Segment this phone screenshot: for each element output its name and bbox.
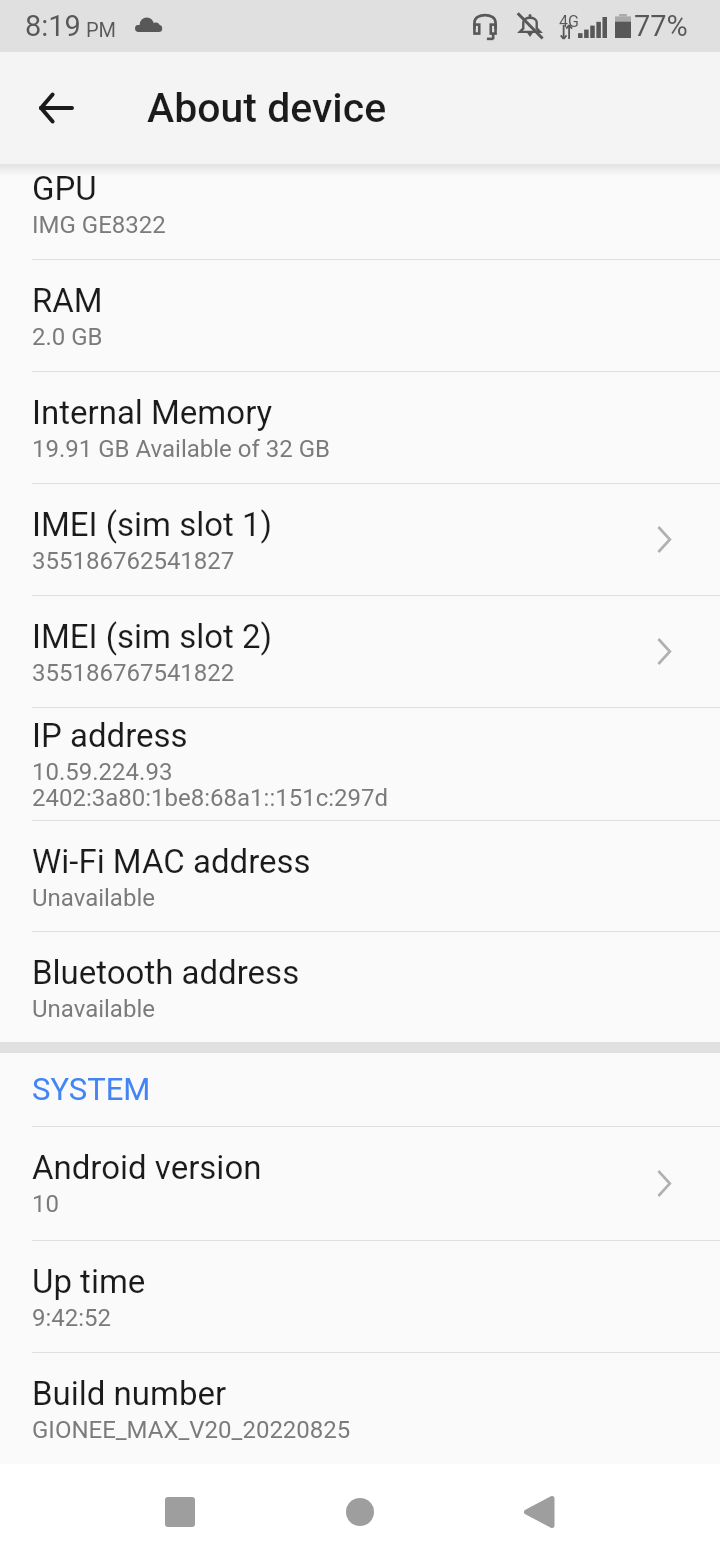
button[interactable]: RAM (0, 260, 720, 371)
staticText: RAM (32, 281, 103, 320)
staticText: 77% (634, 9, 688, 43)
staticText: 355186767541822 (32, 659, 235, 687)
button[interactable]: IMEI (sim slot 2) (0, 596, 720, 707)
staticText: 2402:3a80:1be8:68a1::151c:297d (32, 784, 389, 812)
staticText: Wi-Fi MAC address (32, 842, 311, 881)
staticText: SYSTEM (32, 1071, 151, 1107)
staticText: GPU (32, 169, 97, 208)
staticText: 355186762541827 (32, 547, 235, 575)
button[interactable]: Build number (0, 1353, 720, 1464)
button[interactable]: Back (468, 1464, 608, 1560)
button[interactable]: Bluetooth address (0, 932, 720, 1042)
staticText: 4G (559, 12, 579, 31)
staticText: Build number (32, 1374, 227, 1413)
button[interactable]: IP address (0, 708, 720, 820)
staticText: IP address (32, 716, 188, 755)
staticText: About device (147, 84, 387, 132)
button[interactable]: Back (0, 52, 112, 164)
button[interactable]: Android version (0, 1127, 720, 1240)
staticText: 8:19 (25, 9, 81, 43)
staticText: 2.0 GB (32, 323, 103, 351)
staticText: IMEI (sim slot 1) (32, 505, 273, 544)
staticText: 10 (32, 1190, 59, 1218)
staticText: GIONEE_MAX_V20_20220825 (32, 1416, 351, 1444)
button[interactable]: GPU (0, 164, 720, 259)
staticText: PM (86, 18, 117, 41)
button[interactable]: Up time (0, 1241, 720, 1352)
button[interactable]: Recent apps (110, 1464, 250, 1560)
button[interactable]: Wi-Fi MAC address (0, 821, 720, 931)
staticText: Up time (32, 1262, 146, 1301)
staticText: Internal Memory (32, 393, 273, 432)
staticText: IMEI (sim slot 2) (32, 617, 273, 656)
button[interactable]: Internal Memory (0, 372, 720, 483)
staticText: Bluetooth address (32, 953, 300, 992)
button[interactable]: Home (290, 1464, 430, 1560)
staticText: IMG GE8322 (32, 211, 166, 239)
staticText: Unavailable (32, 995, 155, 1023)
staticText: 10.59.224.93 (32, 758, 173, 786)
staticText: Unavailable (32, 884, 155, 912)
staticText: 19.91 GB Available of 32 GB (32, 435, 330, 463)
staticText: 9:42:52 (32, 1304, 112, 1332)
staticText: Android version (32, 1148, 262, 1187)
button[interactable]: IMEI (sim slot 1) (0, 484, 720, 595)
